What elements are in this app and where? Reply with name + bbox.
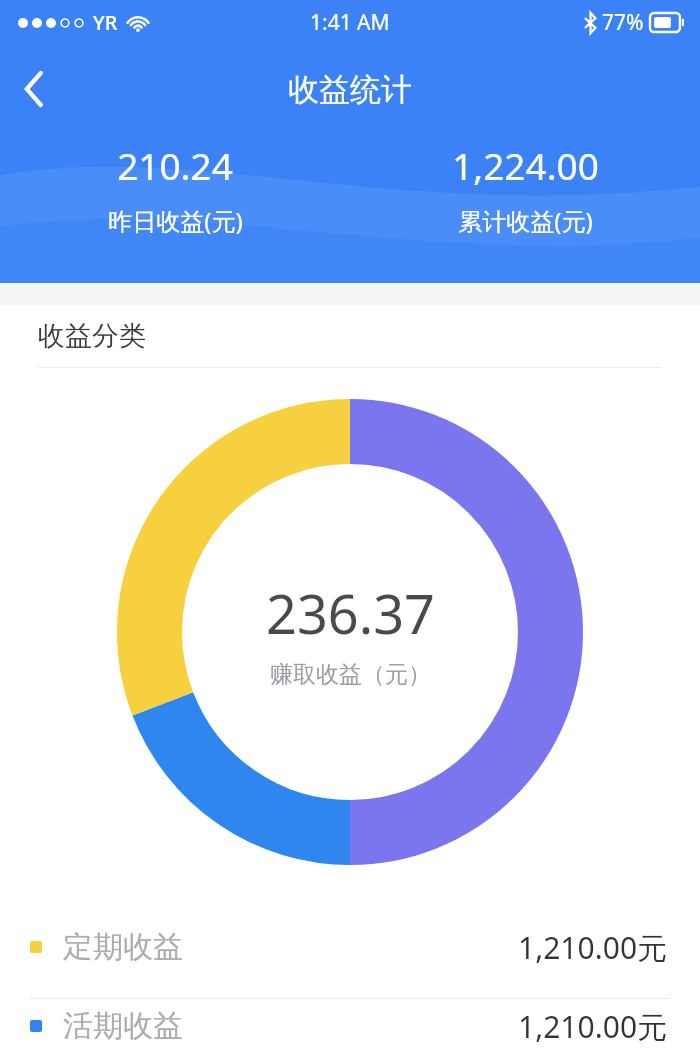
button[interactable]: 活期收益: [0, 999, 700, 1053]
staticText: 累计收益(元): [458, 204, 593, 237]
button[interactable]: 1,224.00: [350, 140, 700, 260]
staticText: 1,210.00元: [518, 1006, 668, 1047]
staticText: 定期收益: [63, 928, 183, 966]
staticText: YR: [93, 9, 118, 36]
button[interactable]: Back: [8, 63, 60, 115]
staticText: 1,224.00: [452, 140, 599, 190]
button[interactable]: 210.24: [0, 140, 350, 260]
staticText: 收益分类: [38, 319, 146, 353]
staticText: 赚取收益（元）: [270, 660, 431, 689]
staticText: 77%: [602, 8, 644, 37]
staticText: 236.37: [266, 576, 435, 650]
button[interactable]: 定期收益: [0, 896, 700, 998]
staticText: 1:41 AM: [310, 8, 390, 37]
staticText: 活期收益: [63, 1007, 183, 1045]
staticText: 1,210.00元: [518, 927, 668, 968]
staticText: 昨日收益(元): [108, 204, 243, 237]
staticText: 210.24: [117, 140, 233, 190]
staticText: 收益统计: [288, 70, 412, 109]
